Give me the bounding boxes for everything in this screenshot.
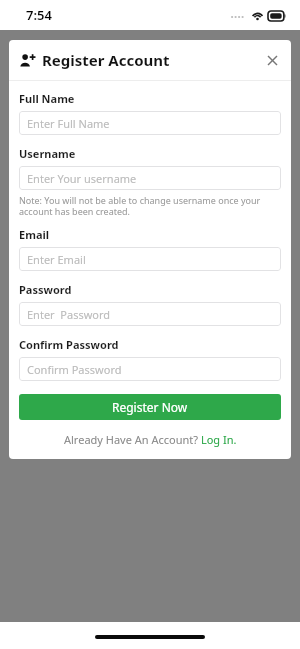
- staticText: 7:54: [26, 6, 52, 24]
- staticText: Email: [19, 227, 50, 242]
- button[interactable]: Enter Full Name: [19, 111, 281, 135]
- staticText: Enter Your username: [27, 171, 137, 186]
- button[interactable]: Register Now: [19, 394, 281, 420]
- staticText: Register Now: [112, 399, 188, 415]
- button[interactable]: Confirm Password: [19, 357, 281, 381]
- button[interactable]: Enter Your username: [19, 166, 281, 190]
- staticText: Full Name: [19, 91, 75, 106]
- button[interactable]: Enter Password: [19, 302, 281, 326]
- staticText: Enter Email: [27, 252, 86, 267]
- staticText: Enter Password: [27, 307, 111, 322]
- staticText: Already Have An Account? Log In.: [64, 432, 237, 447]
- staticText: Confirm Password: [27, 362, 122, 377]
- button[interactable]: Programming & Tech: [16, 430, 284, 460]
- staticText: Register Account: [42, 50, 170, 70]
- button[interactable]: Close: [261, 49, 283, 71]
- staticText: Password: [19, 282, 72, 297]
- staticText: Confirm Password: [19, 337, 119, 352]
- button[interactable]: Enter Email: [19, 247, 281, 271]
- staticText: Username: [19, 146, 76, 161]
- staticText: Programming & Tech: [28, 437, 149, 453]
- staticText: Enter Full Name: [27, 116, 110, 131]
- staticText: Note: You will not be able to change use…: [19, 194, 281, 218]
- button[interactable]: Already Have An Account? Log In.: [19, 432, 281, 447]
